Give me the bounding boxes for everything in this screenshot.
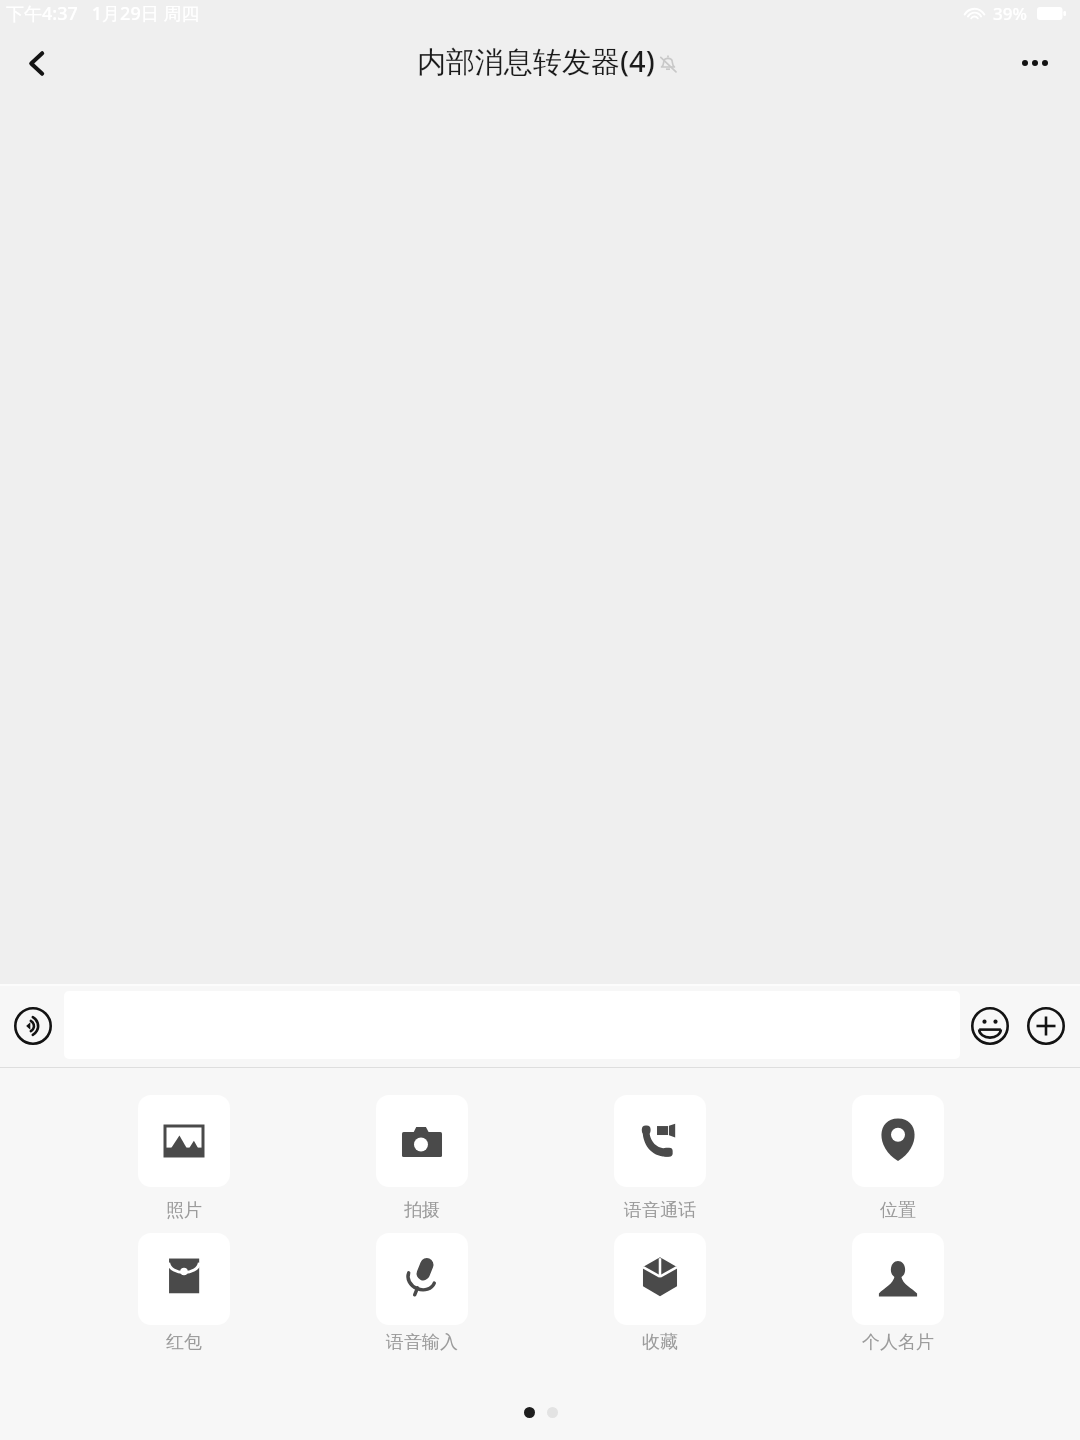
button[interactable]: 语音通话 <box>568 1095 752 1222</box>
staticText: 下午4:37 1月29日 周四 <box>6 1 200 26</box>
button[interactable]: 拍摄 <box>330 1095 514 1222</box>
staticText: 拍摄 <box>404 1199 440 1222</box>
staticText: 内部消息转发器(4) <box>417 41 655 81</box>
button[interactable]: 收藏 <box>568 1233 752 1354</box>
button[interactable]: 照片 <box>92 1095 276 1222</box>
button[interactable]: Voice input <box>0 984 66 1068</box>
staticText: 39% <box>993 2 1027 25</box>
staticText: 语音输入 <box>386 1331 458 1354</box>
staticText: 红包 <box>166 1331 202 1354</box>
button[interactable]: Back <box>0 25 72 101</box>
button[interactable]: Emoji <box>960 984 1019 1068</box>
staticText: 语音通话 <box>624 1199 696 1222</box>
button[interactable]: 红包 <box>92 1233 276 1354</box>
button[interactable]: 语音输入 <box>330 1233 514 1354</box>
staticText: 个人名片 <box>862 1331 934 1354</box>
staticText: 位置 <box>880 1199 916 1222</box>
button[interactable]: 位置 <box>806 1095 990 1222</box>
staticText: 收藏 <box>642 1331 678 1354</box>
staticText: 照片 <box>166 1199 202 1222</box>
button[interactable]: More options <box>990 25 1080 101</box>
button[interactable]: More <box>1015 984 1076 1068</box>
button[interactable]: 个人名片 <box>806 1233 990 1354</box>
